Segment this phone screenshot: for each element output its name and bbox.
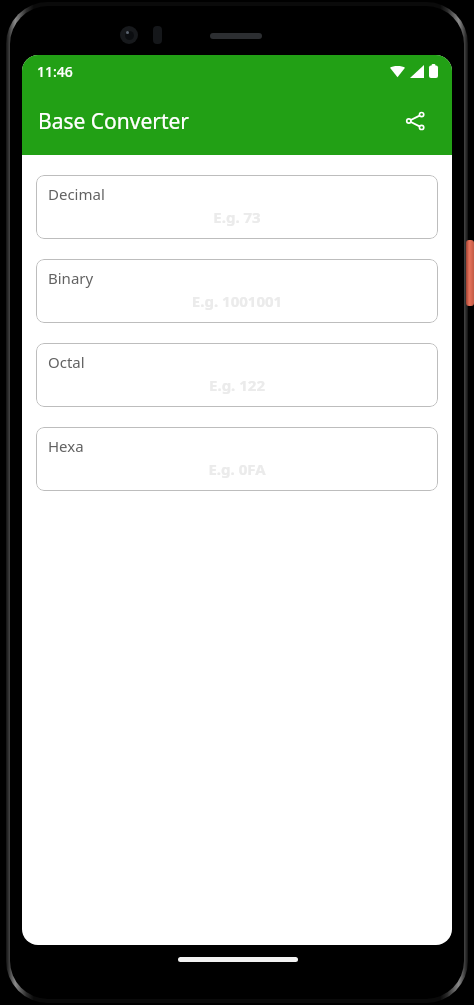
staticText: Base Converter — [38, 107, 190, 136]
button[interactable]: Binary — [36, 259, 438, 323]
button[interactable]: Decimal — [36, 175, 438, 239]
staticText: Decimal — [48, 184, 105, 204]
button[interactable]: Share — [394, 100, 436, 142]
staticText: E.g. 1001001 — [36, 291, 438, 311]
staticText: E.g. 0FA — [36, 459, 438, 479]
button[interactable]: Hexa — [36, 427, 438, 491]
staticText: E.g. 122 — [36, 375, 438, 395]
staticText: 11:46 — [37, 62, 73, 81]
staticText: Binary — [48, 268, 94, 288]
staticText: Hexa — [48, 436, 84, 456]
staticText: E.g. 73 — [36, 207, 438, 227]
other: Power — [466, 240, 474, 306]
staticText: Octal — [48, 352, 85, 372]
button[interactable]: Octal — [36, 343, 438, 407]
